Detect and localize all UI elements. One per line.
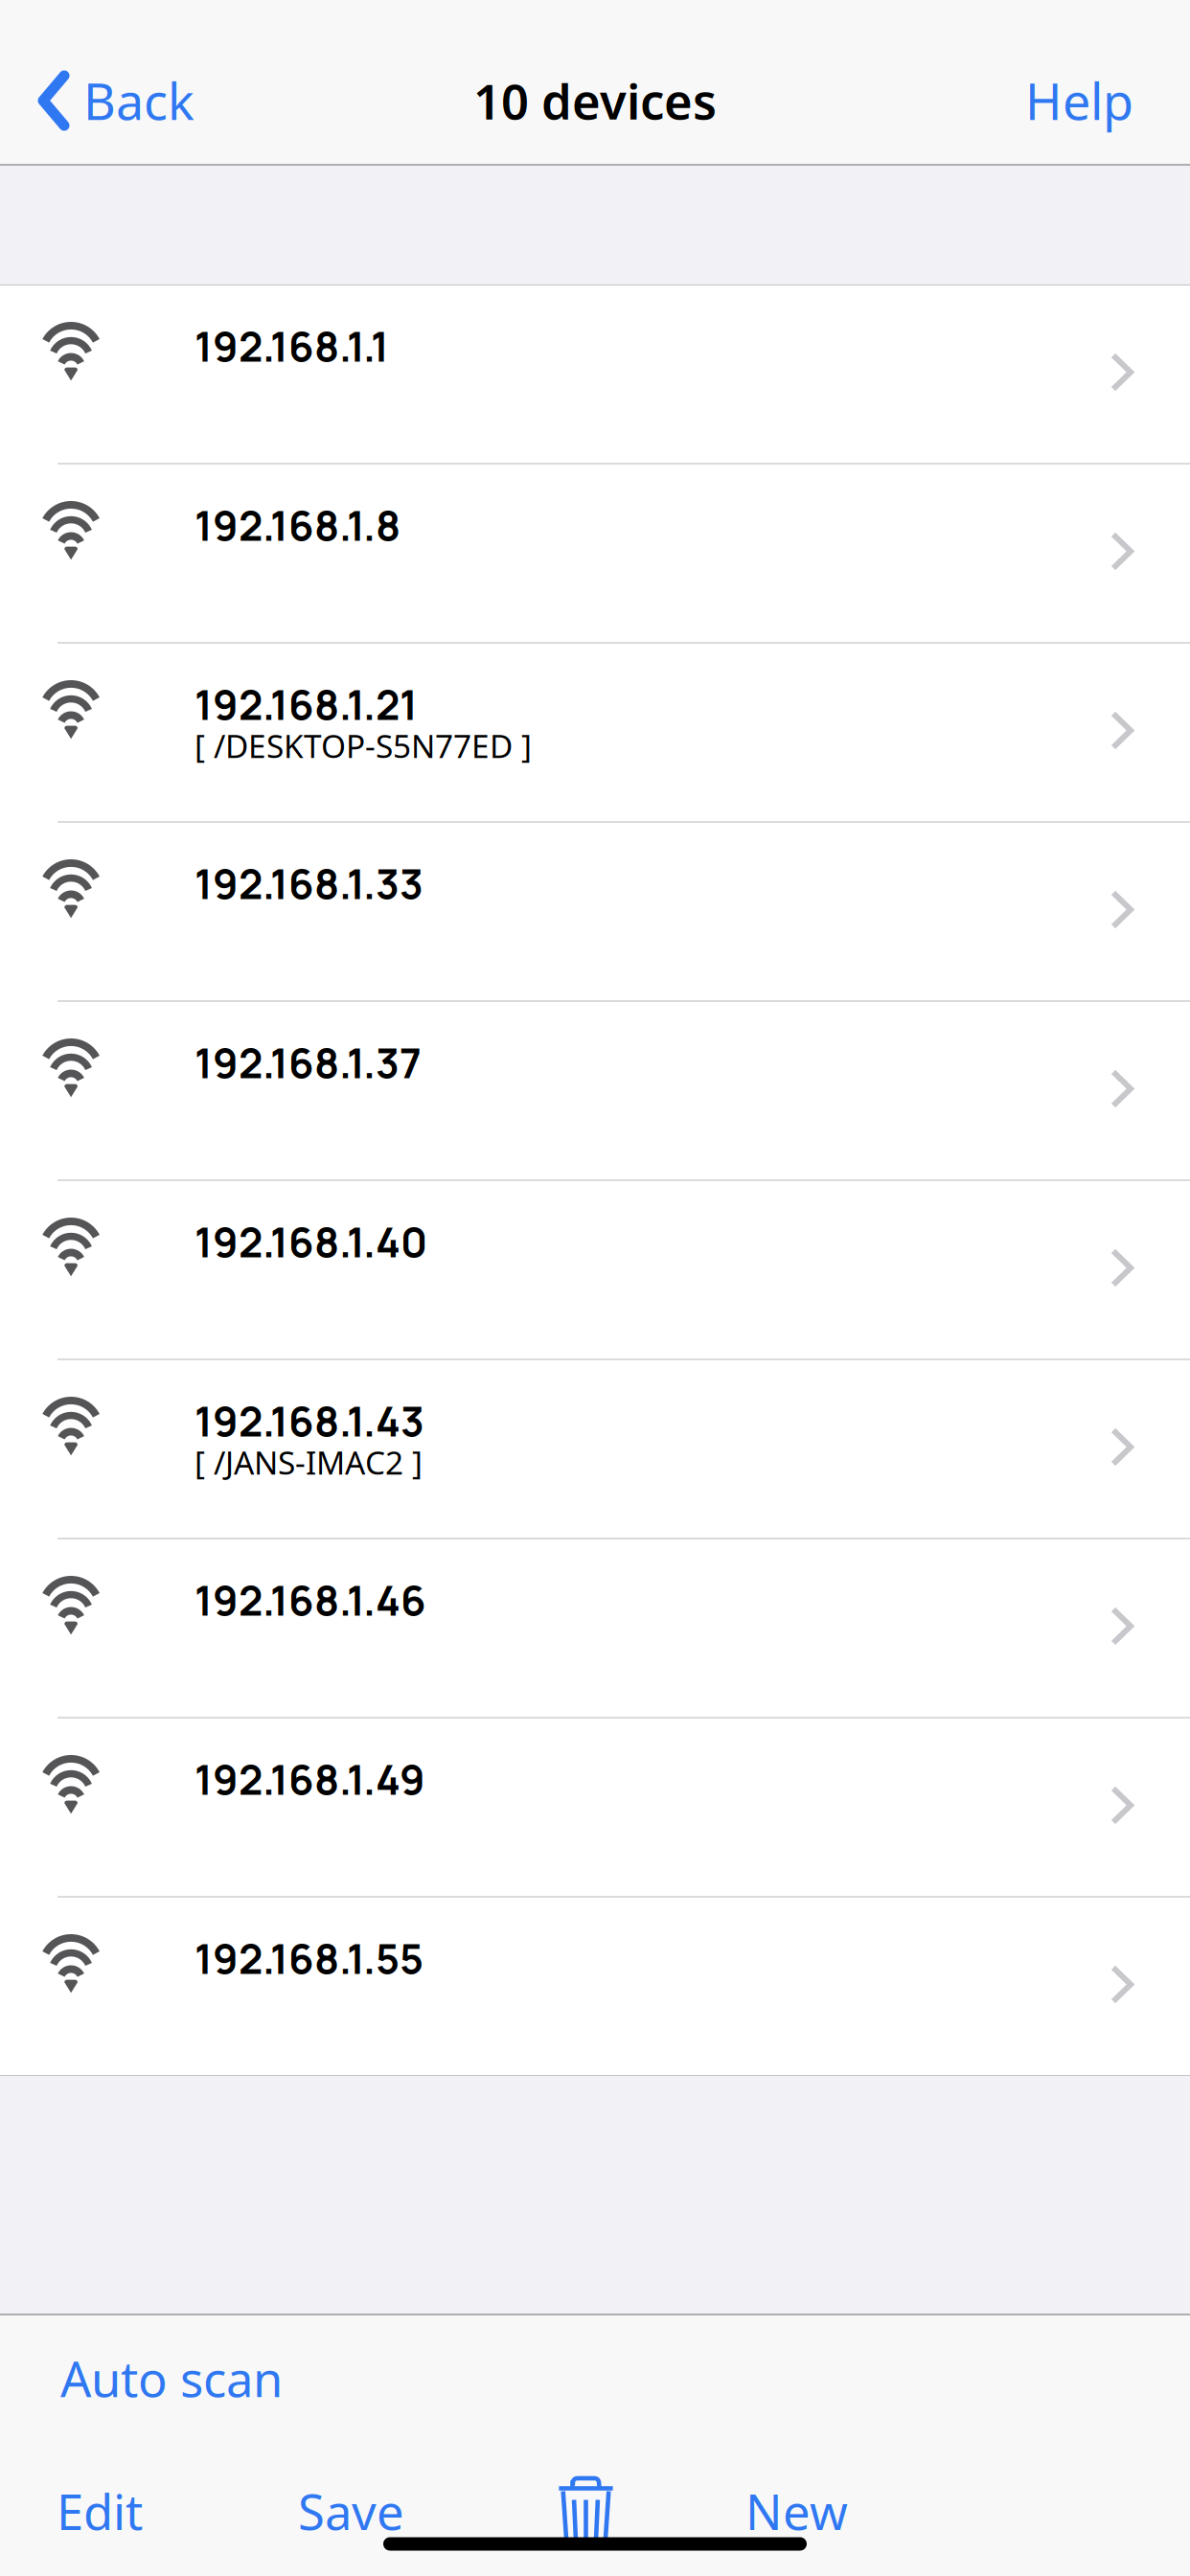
- button[interactable]: Edit: [0, 2441, 177, 2563]
- staticText: 192.168.1.8: [195, 497, 400, 553]
- staticText: Save: [298, 2479, 404, 2543]
- staticText: [ /DESKTOP-S5N77ED ]: [195, 725, 532, 767]
- staticText: 192.168.1.55: [195, 1930, 423, 1986]
- staticText: 192.168.1.43: [195, 1393, 424, 1449]
- button[interactable]: Delete: [528, 2475, 644, 2563]
- button[interactable]: 192.168.1.46: [0, 1539, 1190, 1717]
- staticText: 192.168.1.33: [195, 855, 423, 911]
- staticText: Help: [1025, 68, 1133, 134]
- staticText: 192.168.1.1: [195, 318, 389, 374]
- staticText: Edit: [57, 2479, 143, 2543]
- button[interactable]: 192.168.1.1: [0, 285, 1190, 463]
- staticText: [ /JANS-IMAC2 ]: [195, 1441, 423, 1484]
- button[interactable]: 192.168.1.21: [0, 644, 1190, 821]
- button[interactable]: Save: [263, 2441, 439, 2563]
- button[interactable]: 192.168.1.55: [0, 1898, 1190, 2075]
- staticText: Back: [83, 68, 195, 134]
- button[interactable]: 192.168.1.33: [0, 823, 1190, 1000]
- button[interactable]: Auto scan: [0, 2325, 317, 2432]
- staticText: 192.168.1.46: [195, 1572, 426, 1628]
- button[interactable]: 192.168.1.49: [0, 1719, 1190, 1896]
- staticText: 10 devices: [473, 68, 717, 133]
- staticText: 192.168.1.49: [195, 1751, 425, 1807]
- staticText: 192.168.1.37: [195, 1035, 422, 1090]
- button[interactable]: 192.168.1.8: [0, 465, 1190, 642]
- button[interactable]: New: [711, 2441, 882, 2563]
- button[interactable]: 192.168.1.43: [0, 1360, 1190, 1538]
- staticText: 192.168.1.21: [195, 676, 418, 732]
- staticText: Auto scan: [60, 2346, 283, 2411]
- button[interactable]: Help: [1002, 37, 1190, 164]
- button[interactable]: 192.168.1.40: [0, 1181, 1190, 1358]
- button[interactable]: 192.168.1.37: [0, 1002, 1190, 1179]
- staticText: New: [745, 2479, 848, 2543]
- button[interactable]: Back: [0, 37, 217, 164]
- staticText: 192.168.1.40: [195, 1214, 427, 1270]
